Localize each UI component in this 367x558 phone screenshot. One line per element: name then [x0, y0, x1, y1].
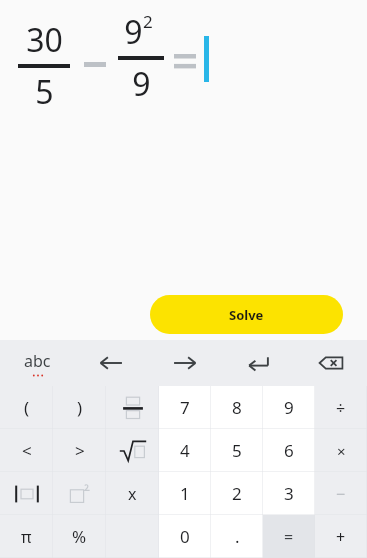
- staticText: .: [235, 525, 240, 548]
- button[interactable]: Solve: [150, 295, 343, 334]
- button[interactable]: Backspace: [294, 340, 367, 386]
- staticText: 3: [284, 482, 294, 505]
- button[interactable]: 9: [263, 386, 315, 429]
- staticText: Solve: [229, 306, 264, 324]
- button[interactable]: 3: [263, 472, 315, 515]
- button[interactable]: −: [315, 472, 367, 515]
- staticText: 9: [284, 396, 294, 419]
- button[interactable]: 6: [263, 429, 315, 472]
- staticText: ): [77, 396, 83, 419]
- button[interactable]: ÷: [315, 386, 367, 429]
- button[interactable]: >: [53, 429, 106, 472]
- button[interactable]: abc: [0, 340, 74, 386]
- button[interactable]: Square: [53, 472, 106, 515]
- staticText: 7: [180, 396, 190, 419]
- staticText: π: [21, 526, 32, 548]
- button[interactable]: 1: [159, 472, 211, 515]
- staticText: =: [284, 526, 294, 548]
- button[interactable]: π: [0, 515, 53, 558]
- staticText: 9: [124, 10, 143, 54]
- staticText: 9: [132, 62, 151, 106]
- button[interactable]: Move right: [148, 340, 221, 386]
- staticText: 5: [232, 439, 242, 462]
- staticText: ÷: [336, 397, 346, 419]
- button[interactable]: (: [0, 386, 53, 429]
- button[interactable]: Absolute value: [0, 472, 53, 515]
- button[interactable]: Enter: [221, 340, 294, 386]
- staticText: x: [128, 483, 137, 505]
- staticText: 6: [284, 439, 294, 462]
- staticText: −: [336, 483, 346, 505]
- button[interactable]: ): [53, 386, 106, 429]
- button[interactable]: 0: [159, 515, 211, 558]
- button[interactable]: Square root: [106, 429, 159, 472]
- button[interactable]: Move left: [74, 340, 148, 386]
- button[interactable]: x: [106, 472, 159, 515]
- button[interactable]: %: [53, 515, 106, 558]
- button[interactable]: 8: [211, 386, 263, 429]
- button[interactable]: Fraction: [106, 386, 159, 429]
- staticText: 2: [232, 482, 242, 505]
- button[interactable]: ×: [315, 429, 367, 472]
- button[interactable]: +: [315, 515, 367, 558]
- staticText: 8: [232, 396, 242, 419]
- staticText: 1: [180, 482, 190, 505]
- staticText: <: [22, 439, 32, 462]
- button[interactable]: 2: [211, 472, 263, 515]
- button[interactable]: =: [263, 515, 315, 558]
- staticText: +: [336, 526, 346, 548]
- staticText: 2: [143, 10, 153, 33]
- button[interactable]: <: [0, 429, 53, 472]
- staticText: 4: [180, 439, 190, 462]
- staticText: 5: [35, 70, 54, 114]
- button[interactable]: 4: [159, 429, 211, 472]
- button[interactable]: 5: [211, 429, 263, 472]
- staticText: %: [72, 525, 87, 548]
- staticText: (: [24, 396, 30, 419]
- staticText: ×: [337, 441, 346, 461]
- button[interactable]: 7: [159, 386, 211, 429]
- staticText: abc: [24, 350, 51, 372]
- button[interactable]: .: [211, 515, 263, 558]
- staticText: 0: [180, 525, 190, 548]
- staticText: >: [75, 439, 85, 462]
- staticText: 30: [26, 18, 63, 62]
